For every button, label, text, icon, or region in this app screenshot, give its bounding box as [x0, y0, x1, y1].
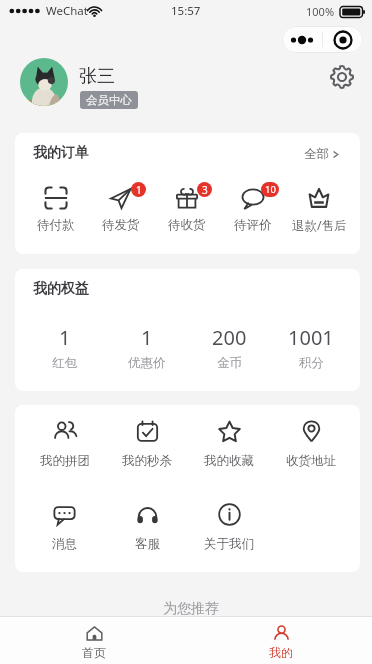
button[interactable]: 我的秒杀 [106, 418, 188, 471]
staticText: 会员中心 [86, 93, 132, 107]
staticText: 我的收藏 [204, 453, 254, 469]
staticText: 我的权益 [33, 280, 89, 298]
staticText: 红包 [52, 355, 77, 371]
button[interactable] [20, 58, 68, 106]
button[interactable]: 1001 [270, 324, 352, 371]
staticText: 首页 [82, 645, 106, 660]
button[interactable]: 待付款 [23, 183, 88, 235]
staticText: 待付款 [37, 217, 75, 233]
staticText: 我的订单 [33, 144, 89, 162]
button[interactable]: 全部 [302, 144, 341, 164]
staticText: WeChat [46, 3, 88, 19]
button[interactable]: 我的收藏 [188, 418, 270, 471]
button[interactable]: 10 [220, 183, 286, 235]
button[interactable]: 消息 [23, 501, 106, 554]
button[interactable]: 退款/售后 [286, 183, 352, 236]
other: Close [323, 26, 363, 53]
staticText: 15:57 [171, 3, 201, 19]
button[interactable]: 客服 [106, 501, 188, 554]
staticText: 消息 [52, 536, 77, 552]
button[interactable]: 1 [106, 324, 188, 371]
button[interactable]: 收货地址 [270, 418, 352, 471]
button[interactable]: 1 [23, 324, 106, 371]
staticText: 1 [59, 324, 71, 351]
staticText: 全部 [304, 146, 329, 162]
button[interactable]: 关于我们 [188, 501, 270, 554]
other: More [282, 26, 322, 53]
button[interactable]: 3 [154, 183, 220, 235]
button[interactable]: 200 [188, 324, 270, 371]
staticText: 金币 [217, 355, 242, 371]
staticText: 我的秒杀 [122, 453, 172, 469]
button[interactable]: 1 [88, 183, 154, 235]
staticText: 待收货 [168, 217, 206, 233]
staticText: 客服 [135, 536, 160, 552]
staticText: 1001 [288, 324, 334, 351]
staticText: 200 [212, 324, 247, 351]
staticText: 为您推荐 [5, 600, 372, 618]
button[interactable]: 首页 [1, 617, 187, 664]
staticText: 待发货 [102, 217, 140, 233]
staticText: 收货地址 [286, 453, 336, 469]
staticText: 我的拼团 [40, 453, 90, 469]
staticText: 3 [202, 183, 208, 197]
staticText: 退款/售后 [292, 217, 347, 234]
button[interactable]: More [282, 26, 363, 53]
button[interactable]: 我的 [188, 617, 372, 664]
staticText: 10 [265, 183, 276, 196]
button[interactable]: 我的拼团 [23, 418, 106, 471]
staticText: 1 [141, 324, 153, 351]
staticText: 我的 [269, 645, 293, 660]
staticText: 积分 [299, 355, 324, 371]
button[interactable]: 会员中心 [80, 91, 138, 109]
staticText: 关于我们 [204, 536, 254, 552]
staticText: 优惠价 [128, 355, 166, 371]
staticText: 100% [306, 4, 335, 19]
staticText: 张三 [79, 65, 115, 88]
button[interactable]: Settings [331, 66, 353, 88]
staticText: 待评价 [234, 217, 272, 233]
staticText: 1 [136, 183, 142, 197]
